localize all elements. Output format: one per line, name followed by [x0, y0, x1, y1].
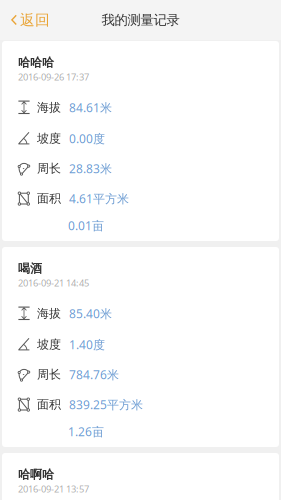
staticText: 784.76米	[69, 366, 119, 382]
staticText: 28.83米	[69, 160, 112, 176]
staticText: 2016-09-21 13:57	[18, 483, 89, 495]
button[interactable]: 哈啊哈	[2, 453, 279, 500]
staticText: 1.26亩	[68, 423, 104, 439]
staticText: 84.61米	[69, 99, 112, 115]
staticText: 0.00度	[69, 130, 105, 146]
staticText: 2016-09-21 14:45	[18, 277, 89, 289]
staticText: 坡度	[37, 337, 61, 352]
staticText: 0.01亩	[68, 217, 104, 233]
button[interactable]: 喝酒	[2, 247, 279, 447]
staticText: 我的测量记录	[101, 12, 179, 28]
button[interactable]: 返回	[0, 2, 61, 38]
staticText: 2016-09-26 17:37	[18, 71, 89, 83]
staticText: 839.25平方米	[69, 396, 143, 412]
staticText: 面积	[37, 191, 61, 206]
staticText: 哈哈哈	[18, 55, 54, 70]
staticText: 返回	[20, 11, 50, 29]
staticText: 海拔	[37, 306, 61, 321]
staticText: 海拔	[37, 100, 61, 115]
staticText: 哈啊哈	[18, 467, 54, 482]
staticText: 周长	[37, 161, 61, 176]
staticText: 85.40米	[69, 305, 112, 321]
staticText: 坡度	[37, 131, 61, 146]
button[interactable]: 哈哈哈	[2, 41, 279, 241]
staticText: 4.61平方米	[69, 190, 129, 206]
staticText: 喝酒	[18, 261, 42, 276]
staticText: 面积	[37, 397, 61, 412]
staticText: 1.40度	[69, 336, 105, 352]
staticText: 周长	[37, 367, 61, 382]
